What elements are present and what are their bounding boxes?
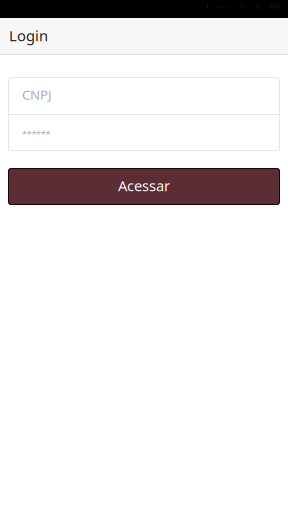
button[interactable]: CNPJ	[8, 77, 280, 114]
staticText: Login	[9, 26, 48, 45]
staticText: CNPJ	[22, 86, 52, 103]
button[interactable]: ******	[8, 115, 280, 151]
staticText: ******	[22, 128, 50, 140]
button[interactable]: Acessar	[8, 168, 280, 205]
staticText: Acessar	[118, 176, 170, 195]
